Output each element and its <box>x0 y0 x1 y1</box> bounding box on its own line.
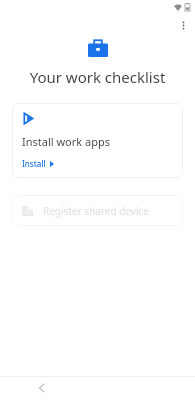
button[interactable]: More options <box>171 13 195 37</box>
button[interactable]: Install work apps <box>12 103 183 178</box>
button[interactable]: Install <box>22 158 54 169</box>
button[interactable]: Back <box>30 377 52 399</box>
button[interactable]: Register shared device <box>12 195 183 226</box>
staticText: Install work apps <box>22 134 111 149</box>
staticText: Install <box>22 158 46 169</box>
staticText: Your work checklist <box>0 67 195 87</box>
staticText: Register shared device <box>43 204 149 218</box>
